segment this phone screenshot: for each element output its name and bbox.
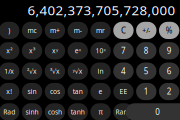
button[interactable]: mr (90, 22, 111, 39)
staticText: eˣ (75, 46, 81, 55)
staticText: Rand (115, 107, 131, 116)
button[interactable]: xʸ (45, 42, 65, 59)
staticText: 1 (144, 86, 149, 97)
staticText: x! (6, 87, 12, 96)
button[interactable]: 0 (126, 103, 180, 120)
button[interactable]: tanh (68, 103, 88, 120)
button[interactable]: sin (22, 83, 42, 100)
button[interactable]: mc (22, 22, 42, 39)
staticText: 2 (167, 86, 172, 97)
staticText: 5 (144, 66, 149, 77)
staticText: % (166, 25, 173, 36)
staticText: ³√x (50, 67, 60, 76)
button[interactable]: ²√x (22, 62, 42, 80)
button[interactable]: 8 (136, 42, 156, 59)
button[interactable]: eˣ (68, 42, 88, 59)
button[interactable]: m+ (45, 22, 65, 39)
button[interactable]: EE (113, 83, 134, 100)
button[interactable]: 9 (159, 42, 179, 59)
staticText: 10ˣ (96, 46, 106, 55)
staticText: 4 (121, 66, 126, 77)
staticText: tan (73, 87, 83, 96)
staticText: sinh (25, 107, 38, 116)
staticText: m+ (50, 26, 60, 35)
button[interactable]: ) (0, 22, 19, 39)
button[interactable]: +/- (136, 22, 156, 39)
button[interactable]: m- (68, 22, 88, 39)
button[interactable]: 10ˣ (90, 42, 111, 59)
staticText: C (121, 25, 126, 36)
staticText: 0 (155, 106, 160, 117)
staticText: 8 (144, 45, 149, 56)
staticText: cosh (48, 107, 62, 116)
button[interactable]: cosh (45, 103, 65, 120)
staticText: ) (8, 26, 10, 35)
staticText: sin (27, 87, 36, 96)
button[interactable]: ʸ√x (68, 62, 88, 80)
button[interactable]: x² (0, 42, 19, 59)
button[interactable]: 1/x (0, 62, 19, 80)
staticText: cos (50, 87, 60, 96)
staticText: 6,402,373,705,728,000 (27, 1, 175, 19)
staticText: EE (119, 87, 127, 96)
staticText: e (99, 87, 103, 96)
button[interactable]: ³√x (45, 62, 65, 80)
staticText: 6 (167, 66, 172, 77)
button[interactable]: 1 (136, 83, 156, 100)
button[interactable]: 6 (159, 62, 179, 80)
staticText: xʸ (52, 46, 58, 55)
button[interactable]: 2 (159, 83, 179, 100)
staticText: m- (74, 26, 82, 35)
button[interactable]: e (90, 83, 111, 100)
staticText: +/- (142, 26, 150, 35)
button[interactable]: 7 (113, 42, 134, 59)
staticText: ²√x (27, 67, 37, 76)
staticText: Rad (3, 107, 15, 116)
button[interactable]: π (90, 103, 111, 120)
button[interactable]: sinh (22, 103, 42, 120)
staticText: mc (27, 26, 36, 35)
button[interactable]: tan (68, 83, 88, 100)
staticText: x² (6, 46, 12, 55)
staticText: ln (98, 67, 104, 76)
button[interactable]: 4 (113, 62, 134, 80)
staticText: ʸ√x (73, 67, 83, 76)
button[interactable]: % (159, 22, 179, 39)
staticText: 9 (167, 45, 172, 56)
button[interactable]: Rand (113, 103, 134, 120)
button[interactable]: Rad (0, 103, 19, 120)
staticText: x³ (29, 46, 35, 55)
button[interactable]: C (113, 22, 134, 39)
staticText: tanh (71, 107, 85, 116)
staticText: 1/x (4, 67, 14, 76)
button[interactable]: x! (0, 83, 19, 100)
button[interactable]: x³ (22, 42, 42, 59)
button[interactable]: 5 (136, 62, 156, 80)
staticText: π (99, 107, 103, 116)
staticText: 7 (121, 45, 126, 56)
button[interactable]: cos (45, 83, 65, 100)
staticText: mr (96, 26, 105, 35)
button[interactable]: ln (90, 62, 111, 80)
